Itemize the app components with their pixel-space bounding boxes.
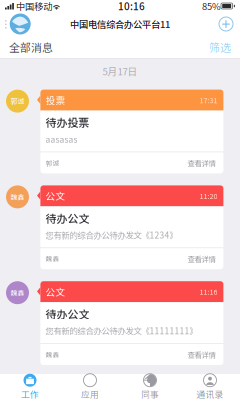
staticText: 魏鑫: [10, 288, 24, 298]
staticText: 待办公文: [45, 210, 89, 226]
staticText: 11:16: [199, 286, 217, 297]
staticText: 同事: [141, 388, 159, 400]
button[interactable]: 应用: [60, 374, 120, 400]
staticText: 工作: [21, 388, 39, 400]
staticText: 查看详情: [187, 157, 215, 168]
staticText: 85%: [202, 0, 221, 13]
button[interactable]: 工作: [0, 374, 60, 400]
staticText: 查看详情: [187, 253, 215, 264]
staticText: 查看详情: [187, 349, 215, 360]
button[interactable]: 郭诚: [0, 90, 240, 173]
staticText: 17:31: [199, 95, 217, 105]
staticText: 5月17日: [102, 64, 137, 78]
staticText: 应用: [81, 388, 99, 400]
staticText: 郭诚: [10, 96, 24, 106]
staticText: 投票: [45, 93, 65, 107]
button[interactable]: Account: [0, 12, 35, 36]
button[interactable]: 魏鑫: [0, 185, 240, 269]
button[interactable]: 筛选: [202, 36, 238, 58]
staticText: 中国移动: [16, 0, 52, 13]
staticText: 待办公文: [45, 306, 89, 322]
staticText: 公文: [45, 189, 65, 203]
staticText: 您有新的综合办公待办发文《1234》: [45, 229, 177, 241]
staticText: aasasas: [45, 133, 77, 145]
staticText: 全部消息: [9, 39, 53, 55]
button[interactable]: 全部消息: [2, 36, 60, 58]
button[interactable]: Add: [214, 12, 240, 36]
staticText: 中国电信综合办公平台11: [70, 17, 170, 31]
button[interactable]: 通讯录: [180, 374, 240, 400]
button[interactable]: 同事: [120, 374, 180, 400]
staticText: 公文: [45, 285, 65, 299]
staticText: 11:20: [199, 191, 217, 201]
staticText: 郭诚: [45, 158, 59, 168]
staticText: 10:16: [118, 0, 145, 13]
staticText: 魏鑫: [45, 254, 59, 264]
staticText: 您有新的综合办公待办发文《11111111》: [45, 325, 197, 337]
staticText: 通讯录: [196, 388, 223, 400]
staticText: 待办投票: [45, 114, 89, 130]
staticText: 筛选: [209, 39, 231, 55]
staticText: 魏鑫: [10, 192, 24, 202]
button[interactable]: 魏鑫: [0, 281, 240, 365]
staticText: 魏鑫: [45, 350, 59, 359]
